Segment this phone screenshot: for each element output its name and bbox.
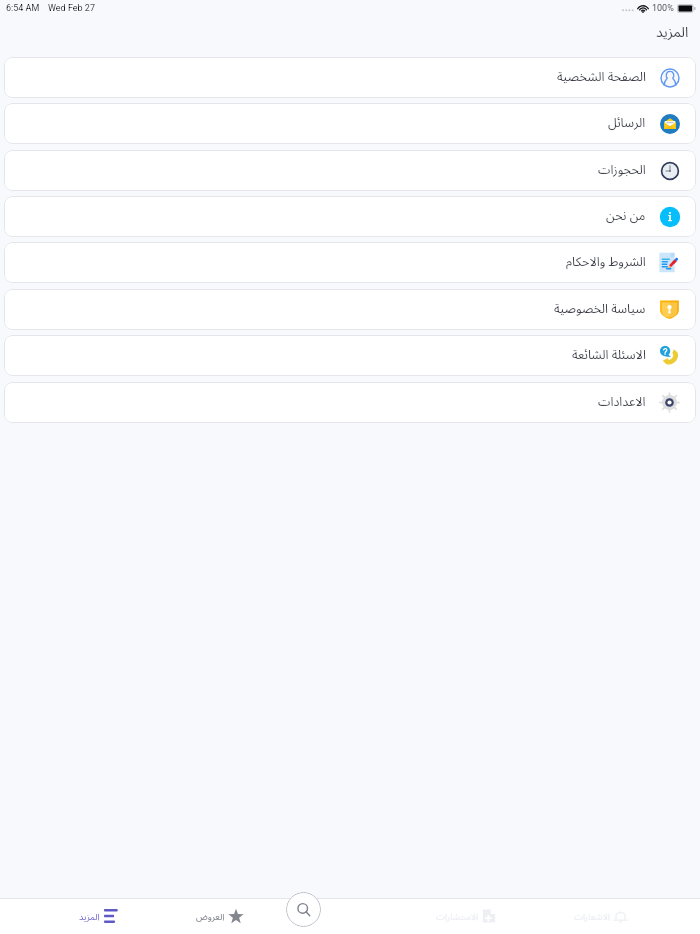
button[interactable]: الشروط والاحكام <box>4 242 696 283</box>
staticText: Wed Feb 27 <box>48 3 95 14</box>
staticText: الشروط والاحكام <box>566 253 646 270</box>
button[interactable]: الرسائل <box>4 103 696 144</box>
button[interactable]: الاستشارات <box>436 908 496 924</box>
staticText: العروض <box>196 910 225 922</box>
staticText: من نحن <box>606 207 646 224</box>
staticText: 100% <box>652 3 674 14</box>
button[interactable]: من نحن <box>4 196 696 237</box>
staticText: الاسئلة الشائعة <box>572 346 646 363</box>
staticText: الاستشارات <box>436 910 479 922</box>
staticText: الصفحة الشخصية <box>557 68 646 85</box>
button[interactable]: Search <box>286 892 321 927</box>
staticText: الاعدادات <box>598 393 646 410</box>
staticText: الحجوزات <box>598 161 646 178</box>
staticText: الرسائل <box>608 114 646 131</box>
staticText: الاشعارات <box>574 910 610 922</box>
staticText: المزيد <box>656 22 689 41</box>
button[interactable]: الاسئلة الشائعة <box>4 335 696 376</box>
button[interactable]: الحجوزات <box>4 150 696 191</box>
button[interactable]: الاشعارات <box>574 908 628 924</box>
button[interactable]: سياسة الخصوصية <box>4 289 696 330</box>
button[interactable]: الاعدادات <box>4 382 696 423</box>
button[interactable]: المزيد <box>79 908 118 924</box>
button[interactable]: الصفحة الشخصية <box>4 57 696 98</box>
button[interactable]: العروض <box>196 908 244 924</box>
staticText: المزيد <box>79 910 100 922</box>
staticText: سياسة الخصوصية <box>554 300 646 317</box>
staticText: 6:54 AM <box>6 3 40 14</box>
